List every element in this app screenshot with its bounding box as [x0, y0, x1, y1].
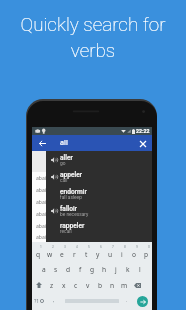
- button[interactable]: z: [46, 277, 58, 293]
- staticText: 22:22: [136, 128, 150, 134]
- staticText: a: [42, 265, 46, 274]
- button[interactable]: rappeler: [46, 219, 152, 236]
- button[interactable]: o: [128, 245, 140, 261]
- staticText: falloir: [60, 205, 77, 213]
- staticText: 9: [136, 245, 138, 249]
- button[interactable]: Enter: [137, 296, 148, 307]
- button[interactable]: Shift: [32, 277, 46, 293]
- staticText: k: [126, 265, 130, 274]
- staticText: call: [60, 178, 68, 184]
- button[interactable]: abaisser: [32, 184, 152, 196]
- button[interactable]: k: [122, 261, 134, 277]
- button[interactable]: abaisser: [32, 232, 152, 242]
- button[interactable]: [62, 293, 121, 309]
- staticText: e: [60, 250, 64, 259]
- button[interactable]: x: [58, 277, 70, 293]
- button[interactable]: g: [86, 261, 98, 277]
- button[interactable]: d: [62, 261, 74, 277]
- button[interactable]: l: [134, 261, 146, 277]
- button[interactable]: b: [94, 277, 106, 293]
- staticText: n: [110, 281, 115, 290]
- staticText: v: [86, 281, 90, 290]
- button[interactable]: q: [32, 245, 44, 261]
- staticText: abaisser: [36, 199, 56, 206]
- staticText: 7: [112, 245, 114, 249]
- staticText: ?1: [34, 298, 40, 304]
- staticText: d: [66, 265, 71, 274]
- other: Play pronunciation: [51, 208, 57, 214]
- staticText: ,: [53, 297, 55, 303]
- staticText: aller: [60, 154, 73, 162]
- button[interactable]: u: [104, 245, 116, 261]
- button[interactable]: ?1: [32, 293, 46, 309]
- button[interactable]: abaisser: [32, 220, 152, 232]
- staticText: t: [85, 250, 88, 259]
- button[interactable]: h: [98, 261, 110, 277]
- staticText: 8: [124, 245, 126, 249]
- button[interactable]: f: [74, 261, 86, 277]
- button[interactable]: Play pronunciation: [46, 168, 152, 185]
- button[interactable]: c: [70, 277, 82, 293]
- button[interactable]: abaisser: [32, 208, 152, 220]
- staticText: appeler: [60, 171, 83, 179]
- staticText: abaisser: [36, 175, 56, 182]
- staticText: 2: [52, 245, 54, 249]
- button[interactable]: i: [116, 245, 128, 261]
- button[interactable]: Back: [36, 137, 49, 150]
- button[interactable]: a: [38, 261, 50, 277]
- button[interactable]: p: [140, 245, 152, 261]
- button[interactable]: Play pronunciation: [46, 151, 152, 168]
- staticText: y: [96, 250, 100, 259]
- staticText: 6: [100, 245, 102, 249]
- staticText: endormir: [60, 188, 87, 196]
- button[interactable]: Play pronunciation: [46, 202, 152, 219]
- staticText: o: [132, 250, 136, 259]
- button[interactable]: e: [56, 245, 68, 261]
- button[interactable]: r: [68, 245, 80, 261]
- staticText: z: [50, 281, 54, 290]
- staticText: p: [144, 250, 149, 259]
- button[interactable]: t: [80, 245, 92, 261]
- staticText: u: [108, 250, 113, 259]
- staticText: 3: [64, 245, 66, 249]
- button[interactable]: Backspace: [130, 277, 144, 293]
- staticText: l: [139, 265, 141, 274]
- staticText: w: [47, 250, 53, 259]
- button[interactable]: w: [44, 245, 56, 261]
- button[interactable]: Clear search: [136, 137, 149, 150]
- staticText: 1: [40, 245, 42, 249]
- other: Play pronunciation: [51, 157, 57, 163]
- staticText: i: [121, 250, 123, 259]
- staticText: 5: [88, 245, 90, 249]
- button[interactable]: abaisser: [32, 172, 152, 184]
- button[interactable]: j: [110, 261, 122, 277]
- staticText: g: [90, 265, 95, 274]
- staticText: abaisser: [36, 234, 56, 241]
- staticText: Quickly search for verbs: [0, 13, 186, 61]
- staticText: m: [121, 281, 128, 290]
- staticText: .: [126, 297, 128, 303]
- staticText: h: [102, 265, 107, 274]
- staticText: x: [62, 281, 66, 290]
- staticText: 4: [76, 245, 78, 249]
- staticText: s: [54, 265, 58, 274]
- staticText: c: [74, 281, 78, 290]
- other: Play pronunciation: [51, 174, 57, 180]
- button[interactable]: y: [92, 245, 104, 261]
- staticText: all: [60, 138, 68, 148]
- button[interactable]: m: [118, 277, 130, 293]
- button[interactable]: abaisser: [32, 196, 152, 208]
- staticText: r: [73, 250, 76, 259]
- staticText: 0: [148, 245, 150, 249]
- button[interactable]: v: [82, 277, 94, 293]
- button[interactable]: endormir: [46, 185, 152, 202]
- staticText: abaisser: [36, 187, 56, 194]
- staticText: recall: [60, 229, 72, 235]
- button[interactable]: s: [50, 261, 62, 277]
- button[interactable]: ,: [48, 293, 60, 309]
- staticText: q: [36, 250, 41, 259]
- staticText: b: [98, 281, 103, 290]
- button[interactable]: n: [106, 277, 118, 293]
- staticText: fall asleep: [60, 195, 82, 201]
